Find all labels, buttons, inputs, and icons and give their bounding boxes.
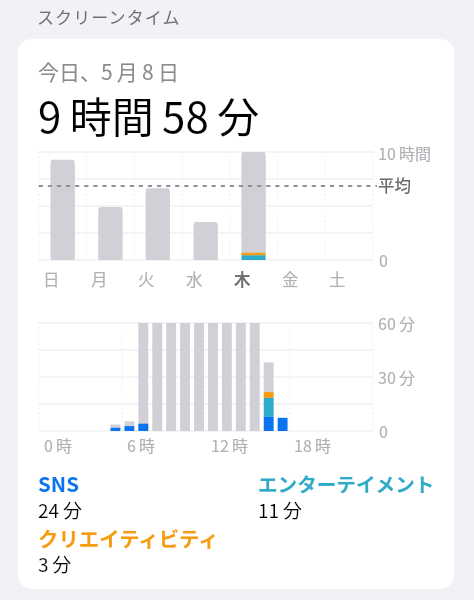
button[interactable]: 11 分 — [258, 496, 302, 524]
staticText: SNS — [38, 468, 79, 498]
button[interactable]: 24 分 — [38, 496, 82, 524]
staticText: スクリーンタイム — [37, 4, 181, 29]
staticText: 18 時 — [294, 433, 331, 456]
staticText: 平均 — [378, 173, 411, 197]
staticText: 3 分 — [38, 550, 72, 578]
staticText: 今日、5 月 8 日 — [38, 56, 179, 86]
button[interactable]: SNS — [38, 468, 79, 498]
staticText: 9 時間 58 分 — [38, 84, 260, 145]
staticText: 12 時 — [211, 433, 248, 456]
staticText: 月 — [91, 267, 108, 291]
staticText: 24 分 — [38, 496, 82, 524]
staticText: 10 時間 — [378, 141, 431, 164]
staticText: クリエイティビティ — [38, 523, 219, 553]
button[interactable]: エンターテイメント — [258, 469, 435, 497]
staticText: エンターテイメント — [258, 469, 435, 497]
staticText: 11 分 — [258, 496, 302, 524]
staticText: 0 時 — [44, 433, 73, 456]
button[interactable]: 3 分 — [38, 550, 72, 578]
button[interactable]: 今日、5 月 8 日 — [18, 39, 454, 589]
staticText: 0 — [379, 248, 388, 271]
staticText: 60 分 — [378, 311, 415, 334]
staticText: 金 — [282, 267, 299, 291]
staticText: 30 分 — [378, 365, 415, 388]
staticText: 6 時 — [127, 433, 156, 456]
staticText: 水 — [186, 267, 203, 291]
button[interactable]: クリエイティビティ — [38, 523, 219, 553]
staticText: 日 — [43, 267, 60, 291]
staticText: 木 — [234, 267, 251, 291]
staticText: 0 — [379, 419, 388, 442]
staticText: 火 — [138, 267, 155, 291]
staticText: 土 — [329, 267, 346, 291]
